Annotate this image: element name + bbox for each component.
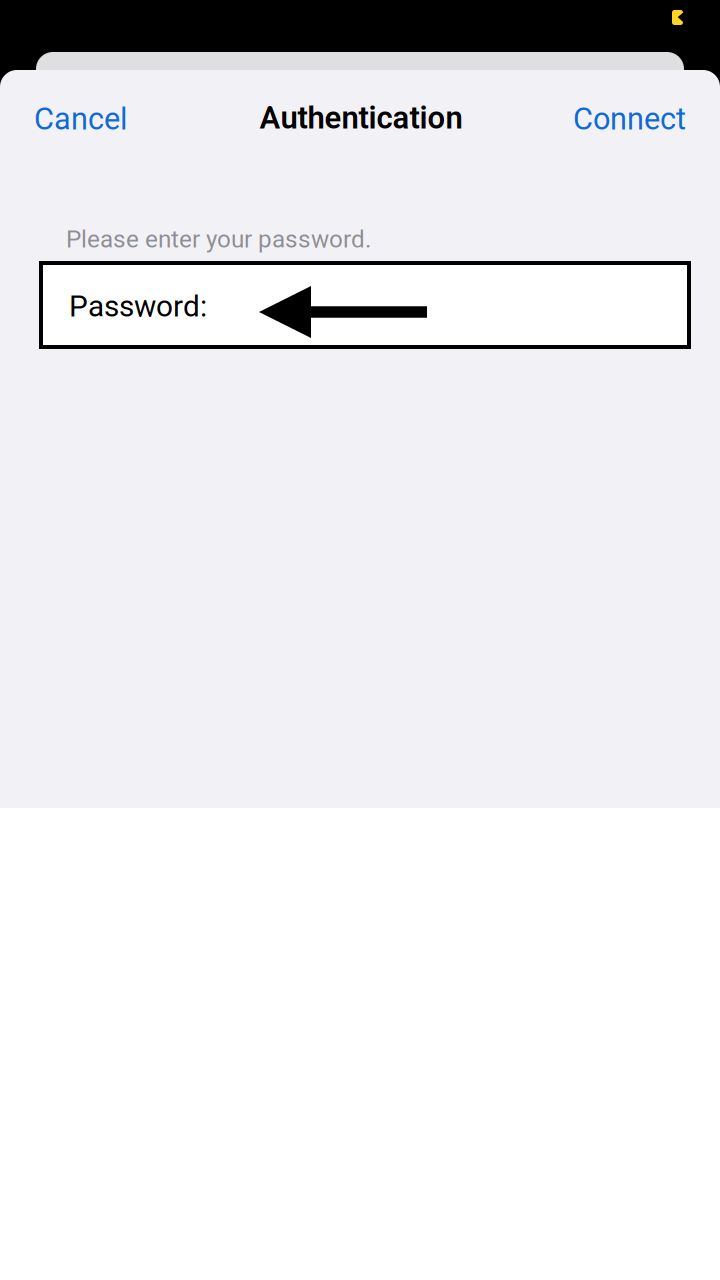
staticText: Password: bbox=[69, 289, 207, 324]
staticText: Connect bbox=[573, 101, 686, 137]
staticText: Please enter your password. bbox=[66, 225, 371, 253]
button[interactable]: Cancel bbox=[34, 74, 154, 164]
staticText: Authentication bbox=[259, 100, 462, 136]
staticText: Cancel bbox=[34, 101, 127, 137]
button[interactable]: Connect bbox=[566, 74, 686, 164]
button[interactable]: Password: bbox=[39, 261, 691, 349]
